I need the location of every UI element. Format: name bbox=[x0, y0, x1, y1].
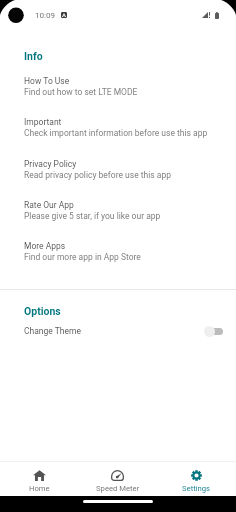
staticText: Check important information before use t… bbox=[24, 128, 208, 138]
staticText: Find our more app in App Store bbox=[24, 252, 141, 262]
staticText: Info bbox=[24, 50, 43, 62]
staticText: Read privacy policy before use this app bbox=[24, 170, 171, 180]
staticText: Important bbox=[24, 117, 62, 127]
staticText: Settings bbox=[182, 484, 211, 493]
staticText: Home bbox=[29, 484, 50, 493]
button[interactable]: Speed Meter bbox=[78, 462, 157, 493]
staticText: Change Theme bbox=[24, 326, 81, 336]
button[interactable]: Settings bbox=[157, 462, 236, 493]
button[interactable]: Privacy Policy bbox=[0, 154, 236, 190]
button[interactable]: Home bbox=[0, 462, 78, 493]
staticText: More Apps bbox=[24, 241, 66, 251]
staticText: Speed Meter bbox=[96, 484, 140, 493]
staticText: Find out how to set LTE MODE bbox=[24, 87, 138, 97]
staticText: Options bbox=[24, 305, 61, 317]
staticText: 10:09 bbox=[35, 10, 56, 19]
staticText: How To Use bbox=[24, 76, 70, 86]
staticText: Privacy Policy bbox=[24, 159, 77, 169]
staticText: Rate Our App bbox=[24, 200, 74, 210]
button[interactable]: Rate Our App bbox=[0, 195, 236, 231]
button[interactable]: More Apps bbox=[0, 236, 236, 272]
button[interactable]: Change Theme bbox=[0, 322, 236, 340]
button[interactable]: How To Use bbox=[0, 71, 236, 107]
staticText: Please give 5 star, if you like our app bbox=[24, 211, 161, 221]
button[interactable]: Important bbox=[0, 112, 236, 148]
